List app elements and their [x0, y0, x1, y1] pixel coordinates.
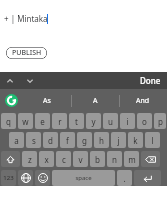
- button[interactable]: q: [1, 113, 16, 129]
- button[interactable]: p: [154, 113, 166, 129]
- button[interactable]: A: [71, 89, 119, 112]
- button[interactable]: o: [137, 113, 152, 129]
- staticText: x: [44, 154, 49, 165]
- staticText: p: [158, 116, 163, 127]
- staticText: And: [136, 96, 150, 106]
- staticText: o: [142, 116, 147, 127]
- staticText: space: [75, 174, 92, 182]
- staticText: z: [28, 154, 32, 165]
- button[interactable]: t: [69, 113, 84, 129]
- button[interactable]: n: [107, 151, 122, 167]
- staticText: y: [91, 116, 96, 127]
- button[interactable]: Next field: [20, 72, 40, 89]
- staticText: v: [78, 154, 83, 165]
- button[interactable]: m: [124, 151, 139, 167]
- staticText: w: [22, 116, 29, 127]
- button[interactable]: Done: [134, 72, 167, 89]
- button[interactable]: i: [120, 113, 135, 129]
- button[interactable]: e: [35, 113, 50, 129]
- button[interactable]: PUBLISH: [6, 47, 47, 59]
- button[interactable]: a: [9, 132, 24, 148]
- button[interactable]: l: [145, 132, 160, 148]
- button[interactable]: r: [52, 113, 67, 129]
- staticText: a: [14, 135, 19, 146]
- staticText: f: [66, 135, 69, 146]
- button[interactable]: x: [39, 151, 54, 167]
- button[interactable]: d: [43, 132, 58, 148]
- staticText: + | Mintaka: [4, 13, 48, 24]
- button[interactable]: f: [60, 132, 75, 148]
- button[interactable]: Previous field: [0, 72, 20, 89]
- button[interactable]: [18, 170, 33, 186]
- staticText: j: [117, 135, 120, 146]
- staticText: k: [133, 135, 138, 146]
- staticText: d: [48, 135, 53, 146]
- button[interactable]: [35, 170, 50, 186]
- staticText: t: [75, 116, 78, 127]
- button[interactable]: b: [90, 151, 105, 167]
- staticText: b: [95, 154, 100, 165]
- staticText: i: [126, 116, 129, 127]
- staticText: A: [93, 96, 98, 106]
- button[interactable]: .: [117, 170, 132, 186]
- button[interactable]: y: [86, 113, 101, 129]
- staticText: n: [112, 154, 117, 165]
- button[interactable]: Google: [0, 89, 22, 112]
- button[interactable]: j: [111, 132, 126, 148]
- button[interactable]: And: [119, 89, 167, 112]
- button[interactable]: [134, 170, 161, 186]
- staticText: e: [40, 116, 45, 127]
- staticText: .: [123, 173, 126, 184]
- button[interactable]: c: [56, 151, 71, 167]
- staticText: PUBLISH: [12, 48, 42, 58]
- button[interactable]: g: [77, 132, 92, 148]
- button[interactable]: z: [22, 151, 37, 167]
- staticText: Done: [140, 75, 161, 86]
- button[interactable]: k: [128, 132, 143, 148]
- staticText: l: [151, 135, 154, 146]
- button[interactable]: v: [73, 151, 88, 167]
- staticText: m: [128, 154, 136, 165]
- staticText: h: [99, 135, 104, 146]
- staticText: As: [43, 96, 51, 106]
- button[interactable]: [1, 151, 20, 167]
- staticText: u: [108, 116, 113, 127]
- button[interactable]: 123: [1, 170, 16, 186]
- button[interactable]: [141, 151, 160, 167]
- staticText: s: [32, 135, 36, 146]
- staticText: c: [62, 154, 66, 165]
- staticText: 123: [3, 174, 14, 182]
- button[interactable]: space: [52, 170, 115, 186]
- button[interactable]: w: [18, 113, 33, 129]
- button[interactable]: As: [22, 89, 71, 112]
- staticText: r: [58, 116, 62, 127]
- button[interactable]: h: [94, 132, 109, 148]
- button[interactable]: s: [26, 132, 41, 148]
- staticText: q: [6, 116, 11, 127]
- staticText: g: [82, 135, 87, 146]
- button[interactable]: u: [103, 113, 118, 129]
